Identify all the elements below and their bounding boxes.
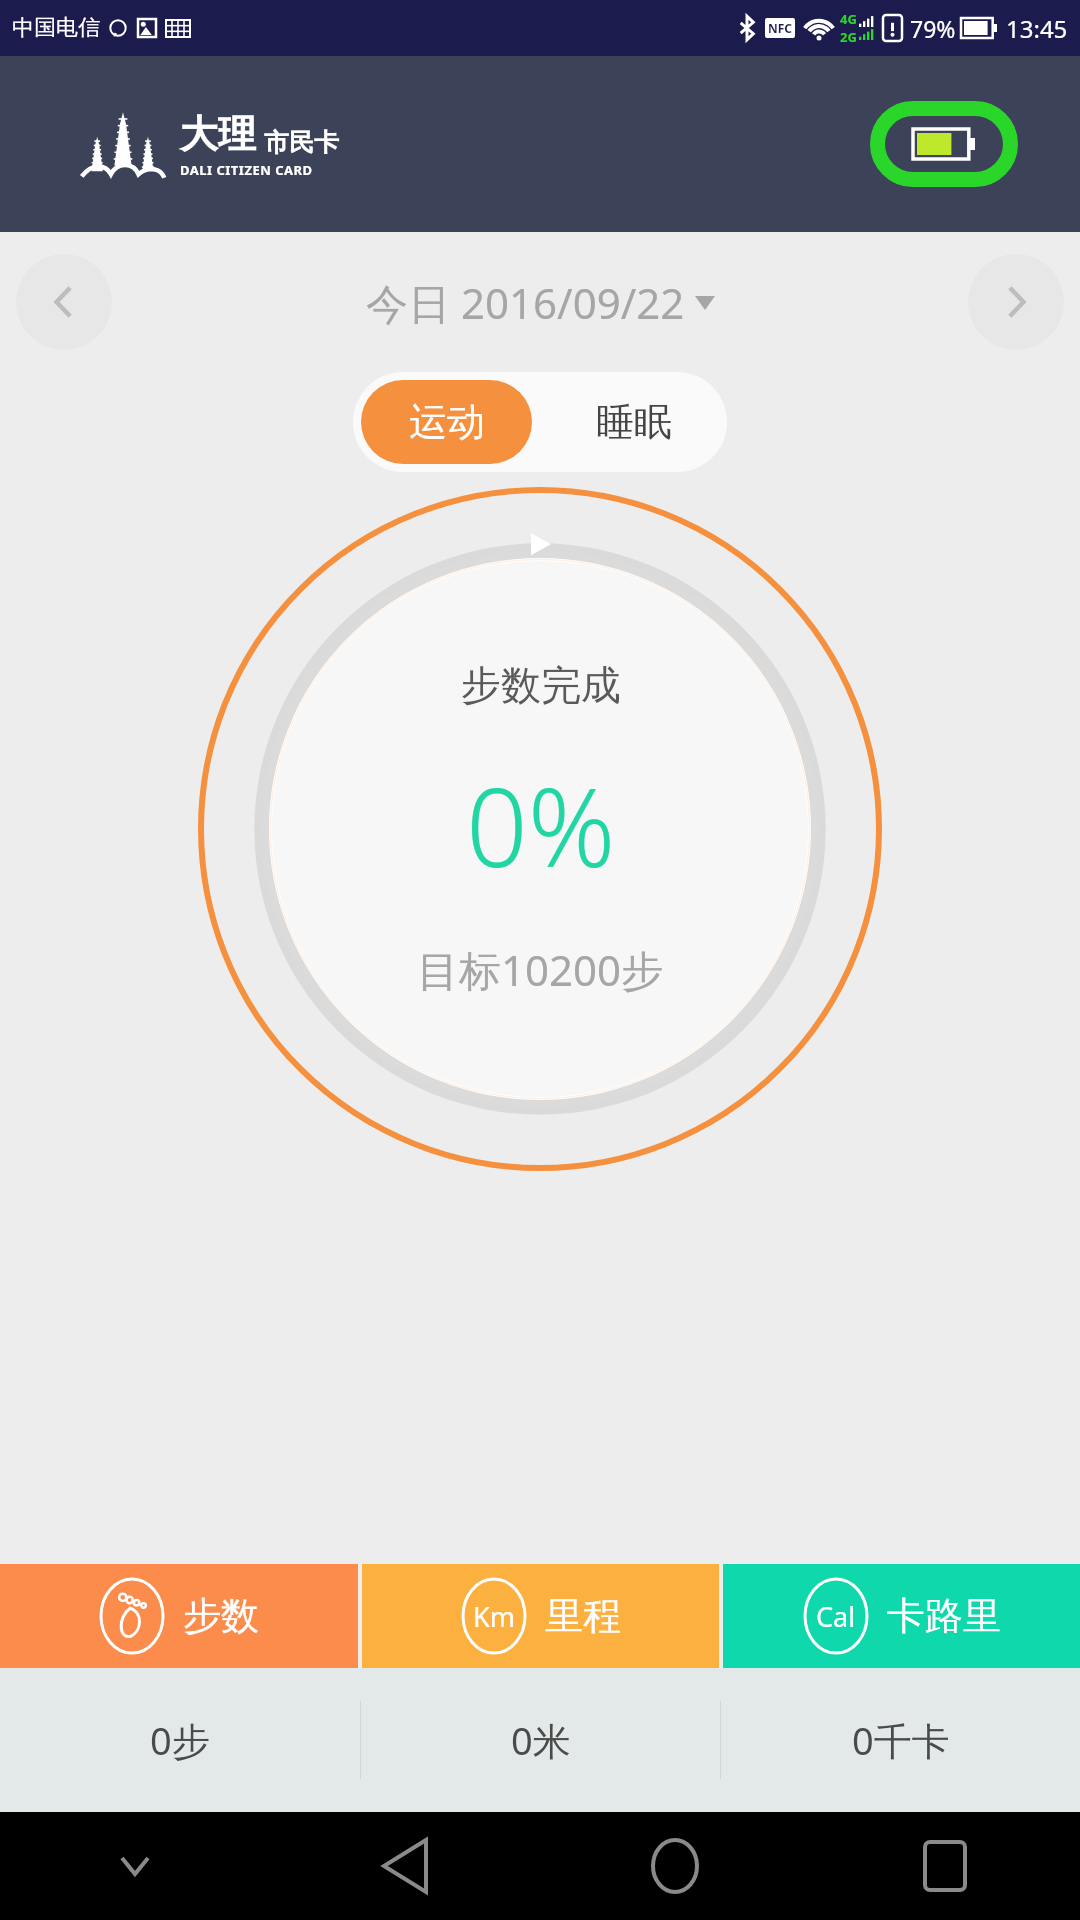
staticText: 步数 xyxy=(183,1592,259,1640)
button[interactable]: Next day xyxy=(968,254,1064,350)
button[interactable]: 今日 2016/09/22 xyxy=(366,274,715,331)
staticText: DALI CITIZEN CARD xyxy=(180,161,313,179)
button[interactable]: 0米 xyxy=(361,1668,720,1812)
staticText: NFC xyxy=(768,20,793,36)
button[interactable]: Previous day xyxy=(16,254,112,350)
staticText: 里程 xyxy=(545,1592,621,1640)
button[interactable]: 0步 xyxy=(0,1668,360,1812)
staticText: 0步 xyxy=(150,1714,210,1766)
staticText: 13:45 xyxy=(1006,12,1068,45)
button[interactable]: Km xyxy=(362,1564,719,1668)
staticText: 睡眠 xyxy=(596,398,672,446)
staticText: Km xyxy=(473,1598,515,1635)
staticText: 0米 xyxy=(511,1714,571,1766)
button[interactable]: 步数 xyxy=(0,1564,358,1668)
button[interactable]: Recent apps xyxy=(810,1812,1080,1920)
staticText: 79% xyxy=(910,13,956,44)
staticText: 目标10200步 xyxy=(417,941,664,998)
staticText: 0% xyxy=(466,752,616,899)
staticText: 运动 xyxy=(409,398,485,446)
button[interactable]: Home xyxy=(540,1812,810,1920)
button[interactable]: 睡眠 xyxy=(548,380,719,464)
staticText: 大理 xyxy=(180,110,256,158)
staticText: 0千卡 xyxy=(852,1714,950,1766)
staticText: 今日 2016/09/22 xyxy=(366,274,685,331)
staticText: 卡路里 xyxy=(887,1592,1001,1640)
staticText: 4G xyxy=(840,10,857,28)
button[interactable]: 步数完成 xyxy=(195,484,885,1174)
button[interactable]: Back xyxy=(270,1812,540,1920)
staticText: 2G xyxy=(840,28,857,46)
button[interactable]: Cal xyxy=(723,1564,1080,1668)
staticText: 步数完成 xyxy=(461,660,621,710)
button[interactable]: Hide keyboard xyxy=(0,1812,270,1920)
button[interactable]: 运动 xyxy=(361,380,532,464)
button[interactable]: 0千卡 xyxy=(721,1668,1080,1812)
staticText: 市民卡 xyxy=(264,127,339,158)
button[interactable]: Device battery xyxy=(870,101,1018,187)
staticText: 中国电信 xyxy=(12,14,100,42)
staticText: Cal xyxy=(816,1598,856,1635)
